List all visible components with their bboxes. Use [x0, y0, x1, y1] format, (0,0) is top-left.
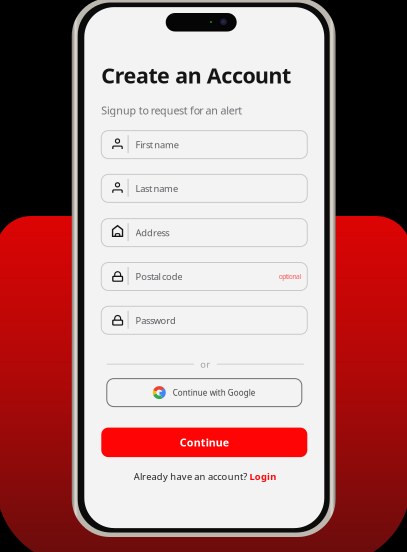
button[interactable]: Continue with Google: [107, 379, 302, 407]
button[interactable]: Password: [101, 306, 307, 334]
staticText: Continue: [180, 435, 229, 449]
staticText: Already have an account?: [134, 470, 247, 483]
button[interactable]: Postal code: [101, 262, 307, 290]
button[interactable]: Address: [101, 219, 307, 247]
button[interactable]: Already have an account?: [101, 469, 307, 483]
staticText: Signup to request for an alert: [101, 103, 242, 117]
button[interactable]: Last name: [101, 174, 307, 202]
staticText: Password: [135, 314, 176, 326]
staticText: Last name: [135, 182, 178, 195]
staticText: Address: [135, 226, 169, 239]
staticText: Postal code: [135, 270, 182, 283]
staticText: First name: [135, 138, 179, 151]
staticText: Create an Account: [101, 61, 291, 89]
staticText: Continue with Google: [173, 387, 256, 398]
staticText: optional: [279, 272, 301, 281]
staticText: or: [200, 358, 210, 370]
button[interactable]: First name: [101, 131, 307, 159]
staticText: Login: [249, 470, 276, 483]
button[interactable]: Continue: [101, 428, 307, 457]
